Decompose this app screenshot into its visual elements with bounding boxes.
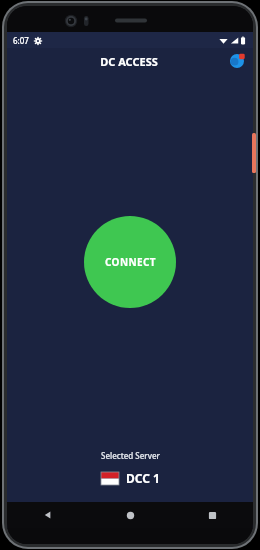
staticText: Selected Server (101, 450, 160, 461)
staticText: DC ACCESS (100, 54, 158, 69)
staticText: DCC 1 (126, 470, 160, 486)
button[interactable]: DCC 1 (97, 468, 164, 488)
staticText: 6:07 (13, 35, 29, 46)
button[interactable]: Account (228, 52, 246, 70)
staticText: CONNECT (105, 255, 156, 269)
button[interactable]: Recents (171, 502, 253, 528)
button[interactable]: Home (89, 502, 171, 528)
other: Power (252, 133, 256, 173)
button[interactable]: CONNECT (84, 216, 176, 308)
button[interactable]: Back (7, 502, 89, 528)
